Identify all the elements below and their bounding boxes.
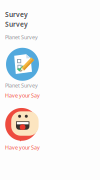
staticText: Planet Survey: [5, 34, 38, 41]
staticText: Survey: [5, 20, 28, 29]
staticText: Planet Survey: [5, 82, 38, 89]
staticText: Have your Say: [5, 92, 40, 99]
staticText: Survey: [5, 10, 28, 19]
staticText: Have your Say: [5, 144, 40, 151]
